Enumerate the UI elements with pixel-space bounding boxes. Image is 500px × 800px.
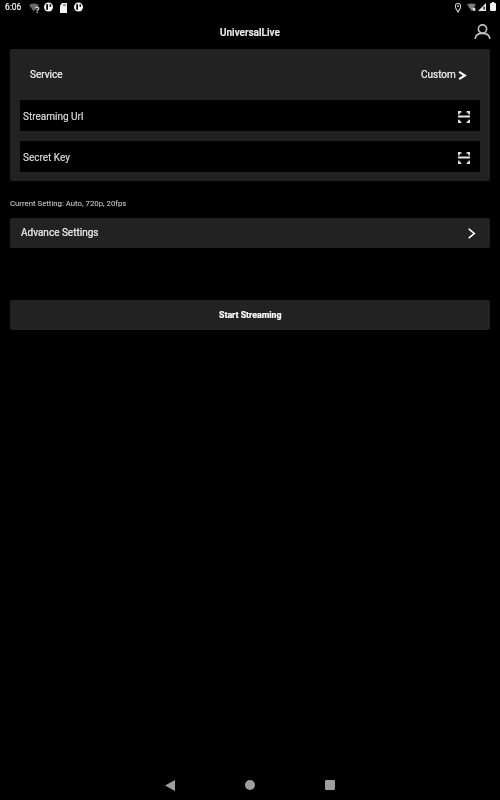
staticText: Streaming Url [23,111,84,123]
staticText: Start Streaming [219,310,282,320]
button[interactable]: Start Streaming [10,300,490,330]
button[interactable]: Streaming Url [20,100,480,131]
button[interactable]: Recent apps [310,765,350,800]
button[interactable]: Secret Key [20,141,480,172]
staticText: UniversalLive [220,27,280,39]
staticText: Current Setting: Auto, 720p, 20fps [10,199,127,208]
staticText: Service [30,69,63,81]
button[interactable]: Account [470,18,495,48]
button[interactable]: Advance Settings [10,218,490,248]
staticText: 6:06 [5,2,22,12]
staticText: Secret Key [23,152,70,164]
button[interactable]: Scan QR code [453,105,475,127]
button[interactable]: Scan QR code [453,146,475,168]
button[interactable]: Service [10,49,490,100]
button[interactable]: Home [230,765,270,800]
staticText: Custom [421,69,456,81]
button[interactable]: Back [150,765,190,800]
staticText: Advance Settings [21,227,99,239]
